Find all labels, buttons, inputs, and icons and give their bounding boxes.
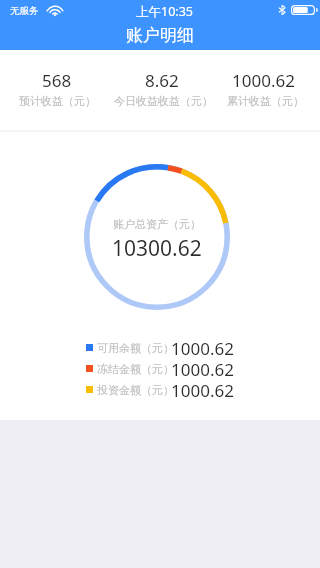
staticText: 账户明细 bbox=[126, 25, 194, 46]
staticText: 1000.62 bbox=[171, 358, 234, 379]
button[interactable]: 568 bbox=[0, 69, 117, 92]
staticText: 预计收益（元） bbox=[19, 94, 96, 108]
staticText: 累计收益（元） bbox=[227, 94, 304, 108]
staticText: 568 bbox=[42, 69, 72, 92]
staticText: 1000.62 bbox=[171, 379, 234, 400]
staticText: 上午10:35 bbox=[136, 3, 193, 20]
staticText: 10300.62 bbox=[112, 234, 202, 263]
staticText: 1000.62 bbox=[171, 337, 234, 358]
staticText: 今日收益收益（元） bbox=[114, 94, 213, 108]
button[interactable]: 8.62 bbox=[102, 69, 222, 92]
staticText: 1000.62 bbox=[232, 69, 295, 92]
staticText: 账户总资产（元） bbox=[113, 217, 201, 231]
staticText: 可用余额（元） bbox=[97, 341, 174, 355]
button[interactable]: 可用余额（元） bbox=[86, 337, 237, 358]
button[interactable]: 冻结金额（元） bbox=[86, 358, 237, 379]
staticText: 无服务 bbox=[10, 5, 39, 17]
staticText: 8.62 bbox=[145, 69, 179, 92]
button[interactable]: 投资金额（元） bbox=[86, 379, 237, 400]
staticText: 投资金额（元） bbox=[97, 383, 174, 397]
staticText: 冻结金额（元） bbox=[97, 362, 174, 376]
button[interactable]: 1000.62 bbox=[203, 69, 320, 92]
